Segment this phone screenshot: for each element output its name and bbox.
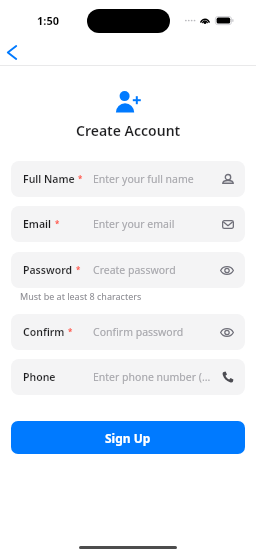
button[interactable]: Email (11, 206, 245, 242)
staticText: Create Account (76, 121, 181, 140)
staticText: Confirm password (93, 325, 184, 339)
staticText: Enter phone number (... (93, 370, 211, 384)
button[interactable]: Sign Up (11, 421, 245, 454)
staticText: * (78, 173, 83, 184)
staticText: * (68, 326, 73, 337)
button[interactable]: Phone (11, 359, 245, 395)
staticText: Email (23, 217, 52, 231)
button[interactable]: Back (1, 41, 23, 63)
staticText: Enter your full name (93, 172, 194, 186)
staticText: Must be at least 8 characters (20, 290, 142, 302)
staticText: Create password (93, 263, 176, 277)
staticText: Full Name (23, 172, 75, 186)
staticText: * (76, 264, 81, 275)
button[interactable]: Confirm (11, 314, 245, 350)
staticText: Phone (23, 370, 56, 384)
staticText: 1:50 (37, 13, 59, 28)
staticText: Enter your email (93, 217, 175, 231)
staticText: Confirm (23, 325, 65, 339)
staticText: Sign Up (105, 430, 151, 446)
button[interactable]: Password (11, 252, 245, 288)
button[interactable]: Full Name (11, 161, 245, 197)
staticText: Password (23, 263, 73, 277)
staticText: * (55, 218, 60, 229)
